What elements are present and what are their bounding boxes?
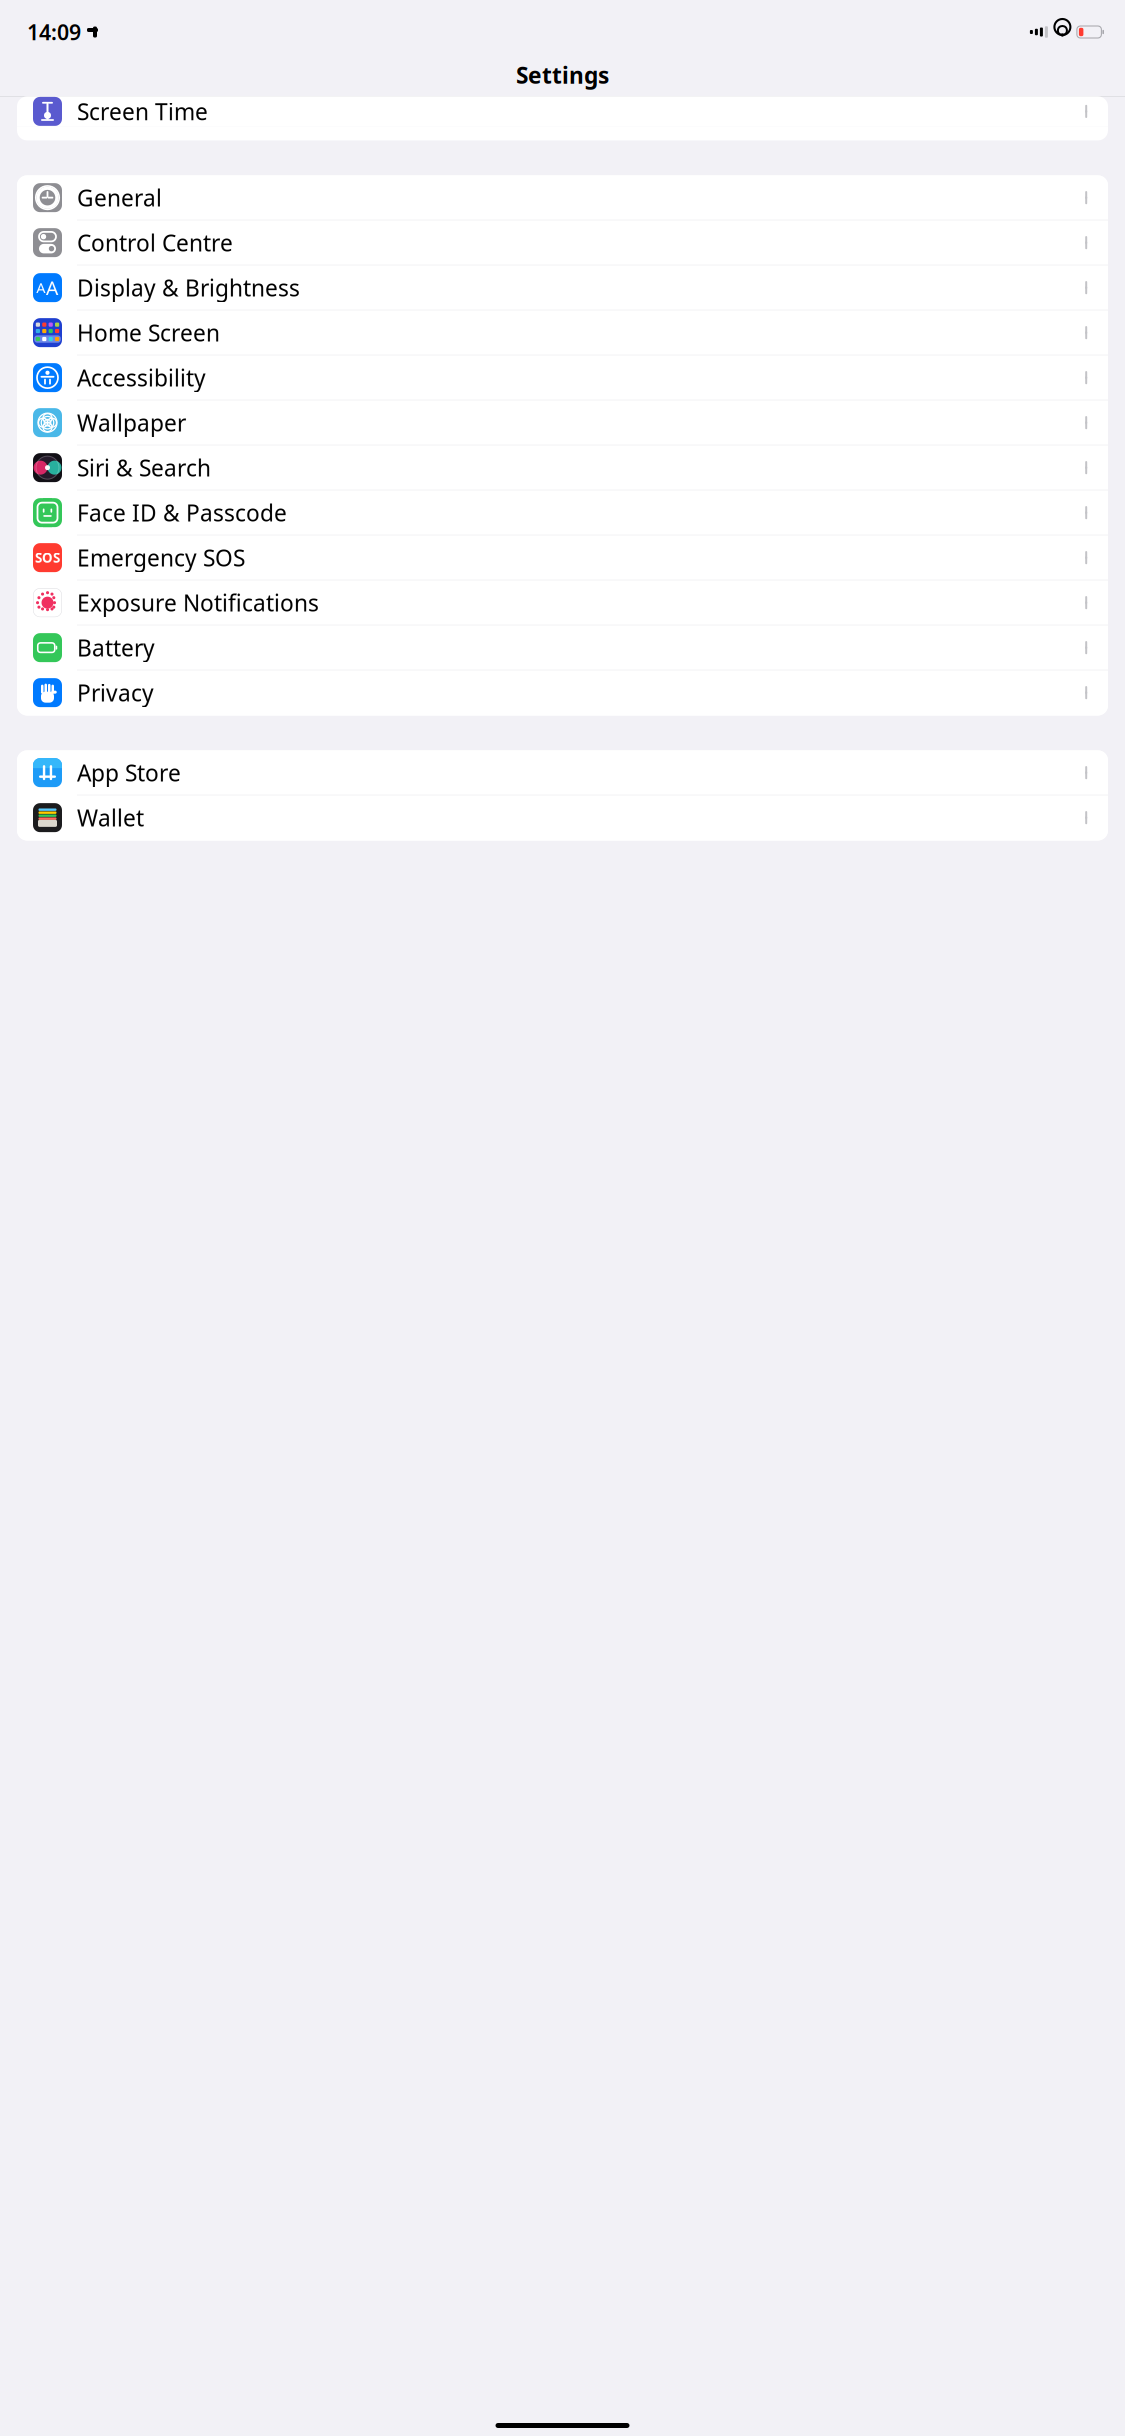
staticText: Wallet [77,803,144,833]
staticText: SOS [35,549,60,566]
button[interactable]: Control Centre [17,220,1108,265]
button[interactable]: Face ID & Passcode [17,490,1108,535]
button[interactable]: Wallpaper [17,400,1108,445]
staticText: Battery [77,633,155,663]
staticText: Home Screen [77,318,220,348]
staticText: Wallpaper [77,408,186,438]
button[interactable]: Battery [17,625,1108,670]
staticText: A [36,278,45,297]
button[interactable]: General [17,175,1108,220]
staticText: Siri & Search [77,453,211,483]
staticText: Privacy [77,678,154,708]
button[interactable]: App Store [17,750,1108,795]
button[interactable]: Accessibility [17,355,1108,400]
button[interactable]: Wallet [17,795,1108,840]
staticText: Exposure Notifications [77,588,319,618]
staticText: App Store [77,758,181,788]
button[interactable]: Privacy [17,670,1108,715]
staticText: A [46,274,59,301]
button[interactable]: Screen Time [17,96,1108,126]
staticText: Control Centre [77,228,233,258]
button[interactable]: Exposure Notifications [17,580,1108,625]
button[interactable]: SOS [17,535,1108,580]
staticText: Settings [516,60,609,90]
staticText: General [77,183,162,213]
staticText: 14:09 [27,18,81,46]
staticText: Emergency SOS [77,543,245,573]
button[interactable]: Home Screen [17,310,1108,355]
button[interactable]: A [17,265,1108,310]
button[interactable]: Siri & Search [17,445,1108,490]
staticText: Display & Brightness [77,273,300,303]
staticText: Accessibility [77,363,206,393]
staticText: Screen Time [77,96,208,126]
staticText: Face ID & Passcode [77,498,287,528]
